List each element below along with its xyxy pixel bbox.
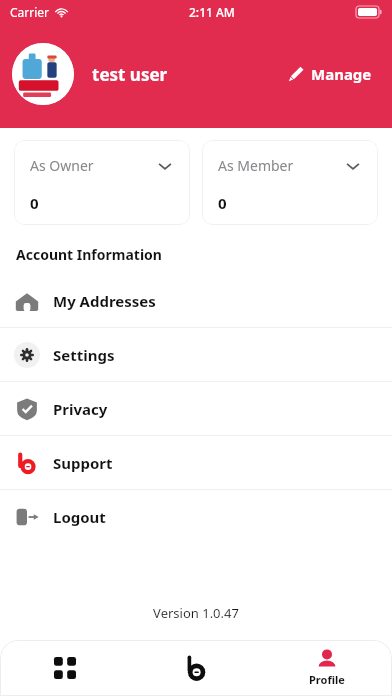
staticText: test user [92,63,168,86]
staticText: Privacy [53,399,108,419]
staticText: Settings [53,345,115,365]
staticText: Version 1.0.47 [0,604,392,622]
button[interactable]: As Member [202,140,378,225]
staticText: My Addresses [53,291,156,311]
button[interactable]: As Owner [14,140,190,225]
staticText: As Member [218,156,294,175]
button[interactable]: Orders [130,640,261,696]
button[interactable]: My Addresses [0,274,392,327]
staticText: As Owner [30,156,94,175]
button[interactable]: Support [0,436,392,489]
staticText: 0 [30,193,39,213]
staticText: Carrier [10,4,50,20]
staticText: 0 [218,193,227,213]
staticText: Support [53,453,113,473]
button[interactable]: Profile [261,640,392,696]
button[interactable]: Logout [0,490,392,543]
staticText: 2:11 AM [189,4,235,20]
button[interactable]: Profile photo [12,43,74,105]
button[interactable]: Manage [284,58,376,90]
button[interactable]: Settings [0,328,392,381]
staticText: Logout [53,507,106,527]
staticText: Account Information [16,245,162,264]
staticText: Profile [309,672,345,687]
staticText: Manage [311,64,372,84]
button[interactable]: Home [0,640,130,696]
button[interactable]: Privacy [0,382,392,435]
